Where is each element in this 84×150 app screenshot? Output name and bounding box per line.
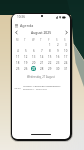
staticText: 24 — [64, 61, 68, 65]
button[interactable]: Next month — [62, 28, 70, 36]
button[interactable]: 31 — [63, 66, 68, 71]
staticText: 19 — [24, 61, 28, 65]
button[interactable]: 29 — [47, 66, 52, 71]
staticText: 30 — [56, 67, 60, 71]
button[interactable]: 09:00 — [12, 82, 70, 92]
staticText: 16 — [56, 55, 60, 59]
button[interactable]: 13 — [31, 54, 36, 59]
button[interactable]: 7 — [39, 48, 44, 53]
button[interactable]: 22 — [47, 60, 52, 65]
button[interactable]: 14 — [39, 54, 44, 59]
button[interactable]: 24 — [63, 60, 68, 65]
button[interactable]: 15 — [47, 54, 52, 59]
button[interactable]: 21 — [39, 60, 44, 65]
staticText: August 2025 — [31, 30, 52, 35]
staticText: 21 — [40, 61, 44, 65]
staticText: Lecture: Advanced Mathematics — [23, 84, 61, 87]
staticText: 10:36 — [17, 15, 25, 19]
button[interactable]: 17 — [63, 54, 68, 59]
staticText: W — [32, 38, 35, 42]
button[interactable]: Open navigation menu — [12, 21, 20, 29]
button[interactable]: Previous month — [12, 28, 20, 36]
staticText: S — [64, 38, 66, 42]
staticText: 8 — [49, 49, 51, 53]
staticText: 1 — [49, 43, 51, 47]
staticText: 15 — [48, 55, 52, 59]
button[interactable]: 20 — [31, 60, 36, 65]
staticText: T — [40, 38, 42, 42]
staticText: 4 — [17, 49, 19, 53]
staticText: 22 — [48, 61, 52, 65]
button[interactable]: 5 — [23, 48, 28, 53]
staticText: 28 — [40, 67, 44, 71]
button[interactable]: 18 — [15, 60, 20, 65]
staticText: 6 — [33, 49, 35, 53]
staticText: 26 — [24, 67, 28, 71]
button[interactable]: 3 — [63, 42, 68, 47]
staticText: Agenda — [20, 23, 34, 28]
staticText: 14 — [40, 55, 44, 59]
staticText: 23 — [56, 61, 60, 65]
staticText: 5 — [25, 49, 27, 53]
staticText: F — [48, 38, 50, 42]
button[interactable]: 6 — [31, 48, 36, 53]
button[interactable]: 10 — [63, 48, 68, 53]
staticText: 13 — [32, 55, 36, 59]
staticText: 27 — [32, 67, 36, 71]
button[interactable]: 8 — [47, 48, 52, 53]
button[interactable]: 27 — [31, 66, 36, 71]
button[interactable]: 23 — [55, 60, 60, 65]
button[interactable]: 19 — [23, 60, 28, 65]
staticText: Wednesday, 27 August — [27, 75, 55, 79]
button[interactable]: 12 — [23, 54, 28, 59]
button[interactable]: 2 — [55, 42, 60, 47]
staticText: 10 — [64, 49, 68, 53]
staticText: T — [24, 38, 26, 42]
staticText: M — [16, 38, 19, 42]
staticText: S — [56, 38, 58, 42]
staticText: 25 — [16, 67, 20, 71]
staticText: 12 — [24, 55, 28, 59]
button[interactable]: 11 — [15, 54, 20, 59]
staticText: 17 — [64, 55, 68, 59]
button[interactable]: 9 — [55, 48, 60, 53]
staticText: 29 — [48, 67, 52, 71]
staticText: 20 — [32, 61, 36, 65]
button[interactable]: 4 — [15, 48, 20, 53]
staticText: 09:00 — [14, 86, 21, 89]
staticText: Building C - Room 204 — [23, 88, 47, 91]
staticText: 2 — [57, 43, 59, 47]
staticText: 3 — [65, 43, 67, 47]
button[interactable]: 26 — [23, 66, 28, 71]
button[interactable]: 1 — [47, 42, 52, 47]
button[interactable]: 30 — [55, 66, 60, 71]
staticText: 11 — [16, 55, 20, 59]
staticText: 7 — [41, 49, 43, 53]
button[interactable]: 25 — [15, 66, 20, 71]
staticText: 9 — [57, 49, 59, 53]
staticText: 31 — [64, 67, 68, 71]
button[interactable]: 28 — [39, 66, 44, 71]
button[interactable]: 16 — [55, 54, 60, 59]
staticText: 18 — [16, 61, 20, 65]
